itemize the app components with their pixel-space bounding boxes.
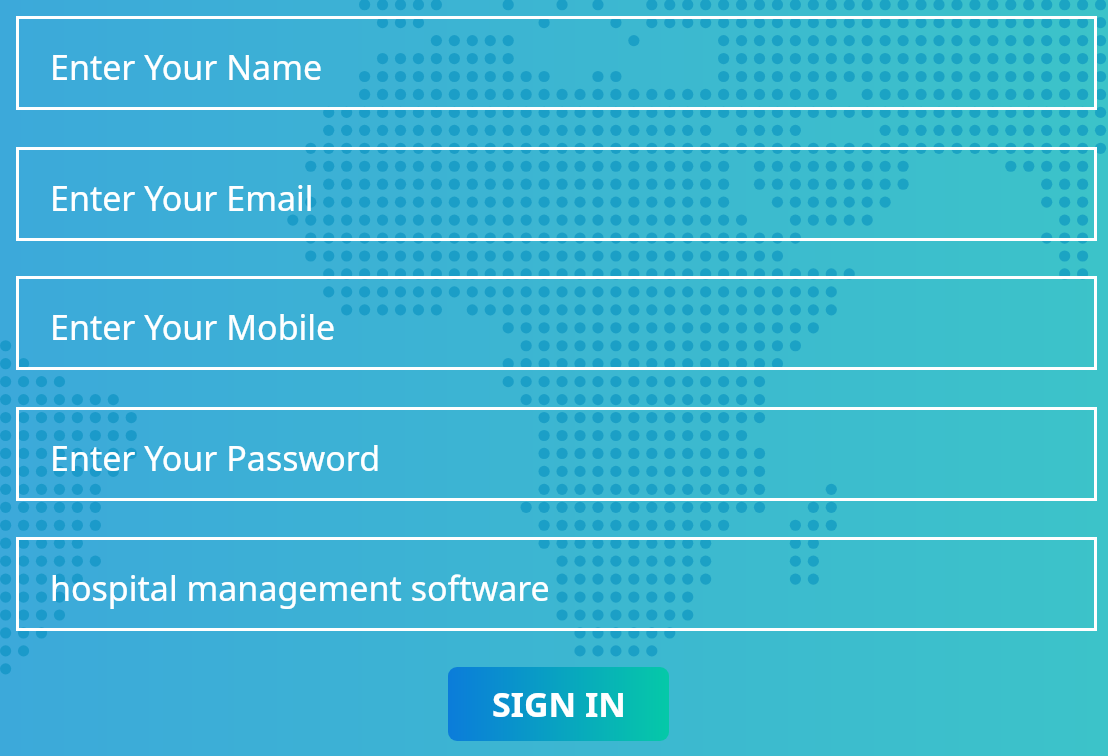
button[interactable]: hospital management software: [16, 537, 1097, 631]
button[interactable]: Enter Your Password: [16, 407, 1097, 501]
staticText: hospital management software: [50, 565, 550, 611]
staticText: Enter Your Email: [50, 175, 314, 221]
button[interactable]: Enter Your Email: [16, 147, 1097, 241]
button[interactable]: Enter Your Name: [16, 16, 1097, 110]
staticText: Enter Your Password: [50, 435, 381, 481]
button[interactable]: SIGN IN: [448, 667, 669, 741]
staticText: Enter Your Mobile: [50, 304, 336, 350]
button[interactable]: Enter Your Mobile: [16, 276, 1097, 370]
staticText: Enter Your Name: [50, 44, 323, 90]
staticText: SIGN IN: [492, 681, 626, 727]
